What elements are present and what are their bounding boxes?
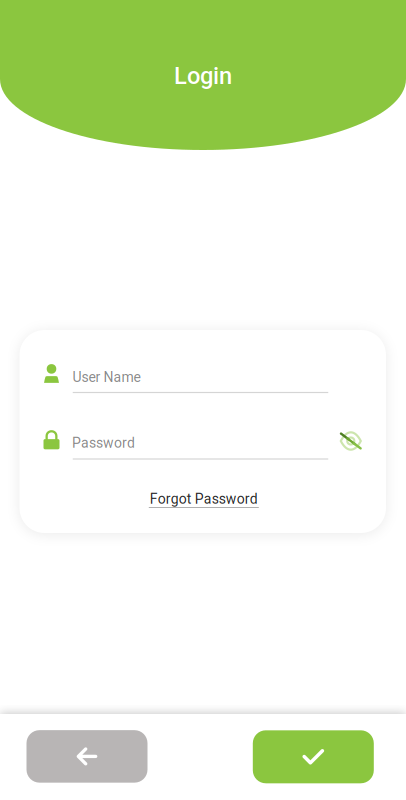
button[interactable]: Confirm (253, 730, 374, 783)
staticText: Password (72, 435, 135, 451)
button[interactable]: Show password (340, 430, 362, 452)
staticText: Forgot Password (150, 491, 258, 507)
button[interactable]: Back (26, 730, 147, 783)
staticText: Login (174, 62, 232, 90)
button[interactable]: Forgot Password (144, 488, 264, 514)
staticText: User Name (72, 369, 140, 385)
